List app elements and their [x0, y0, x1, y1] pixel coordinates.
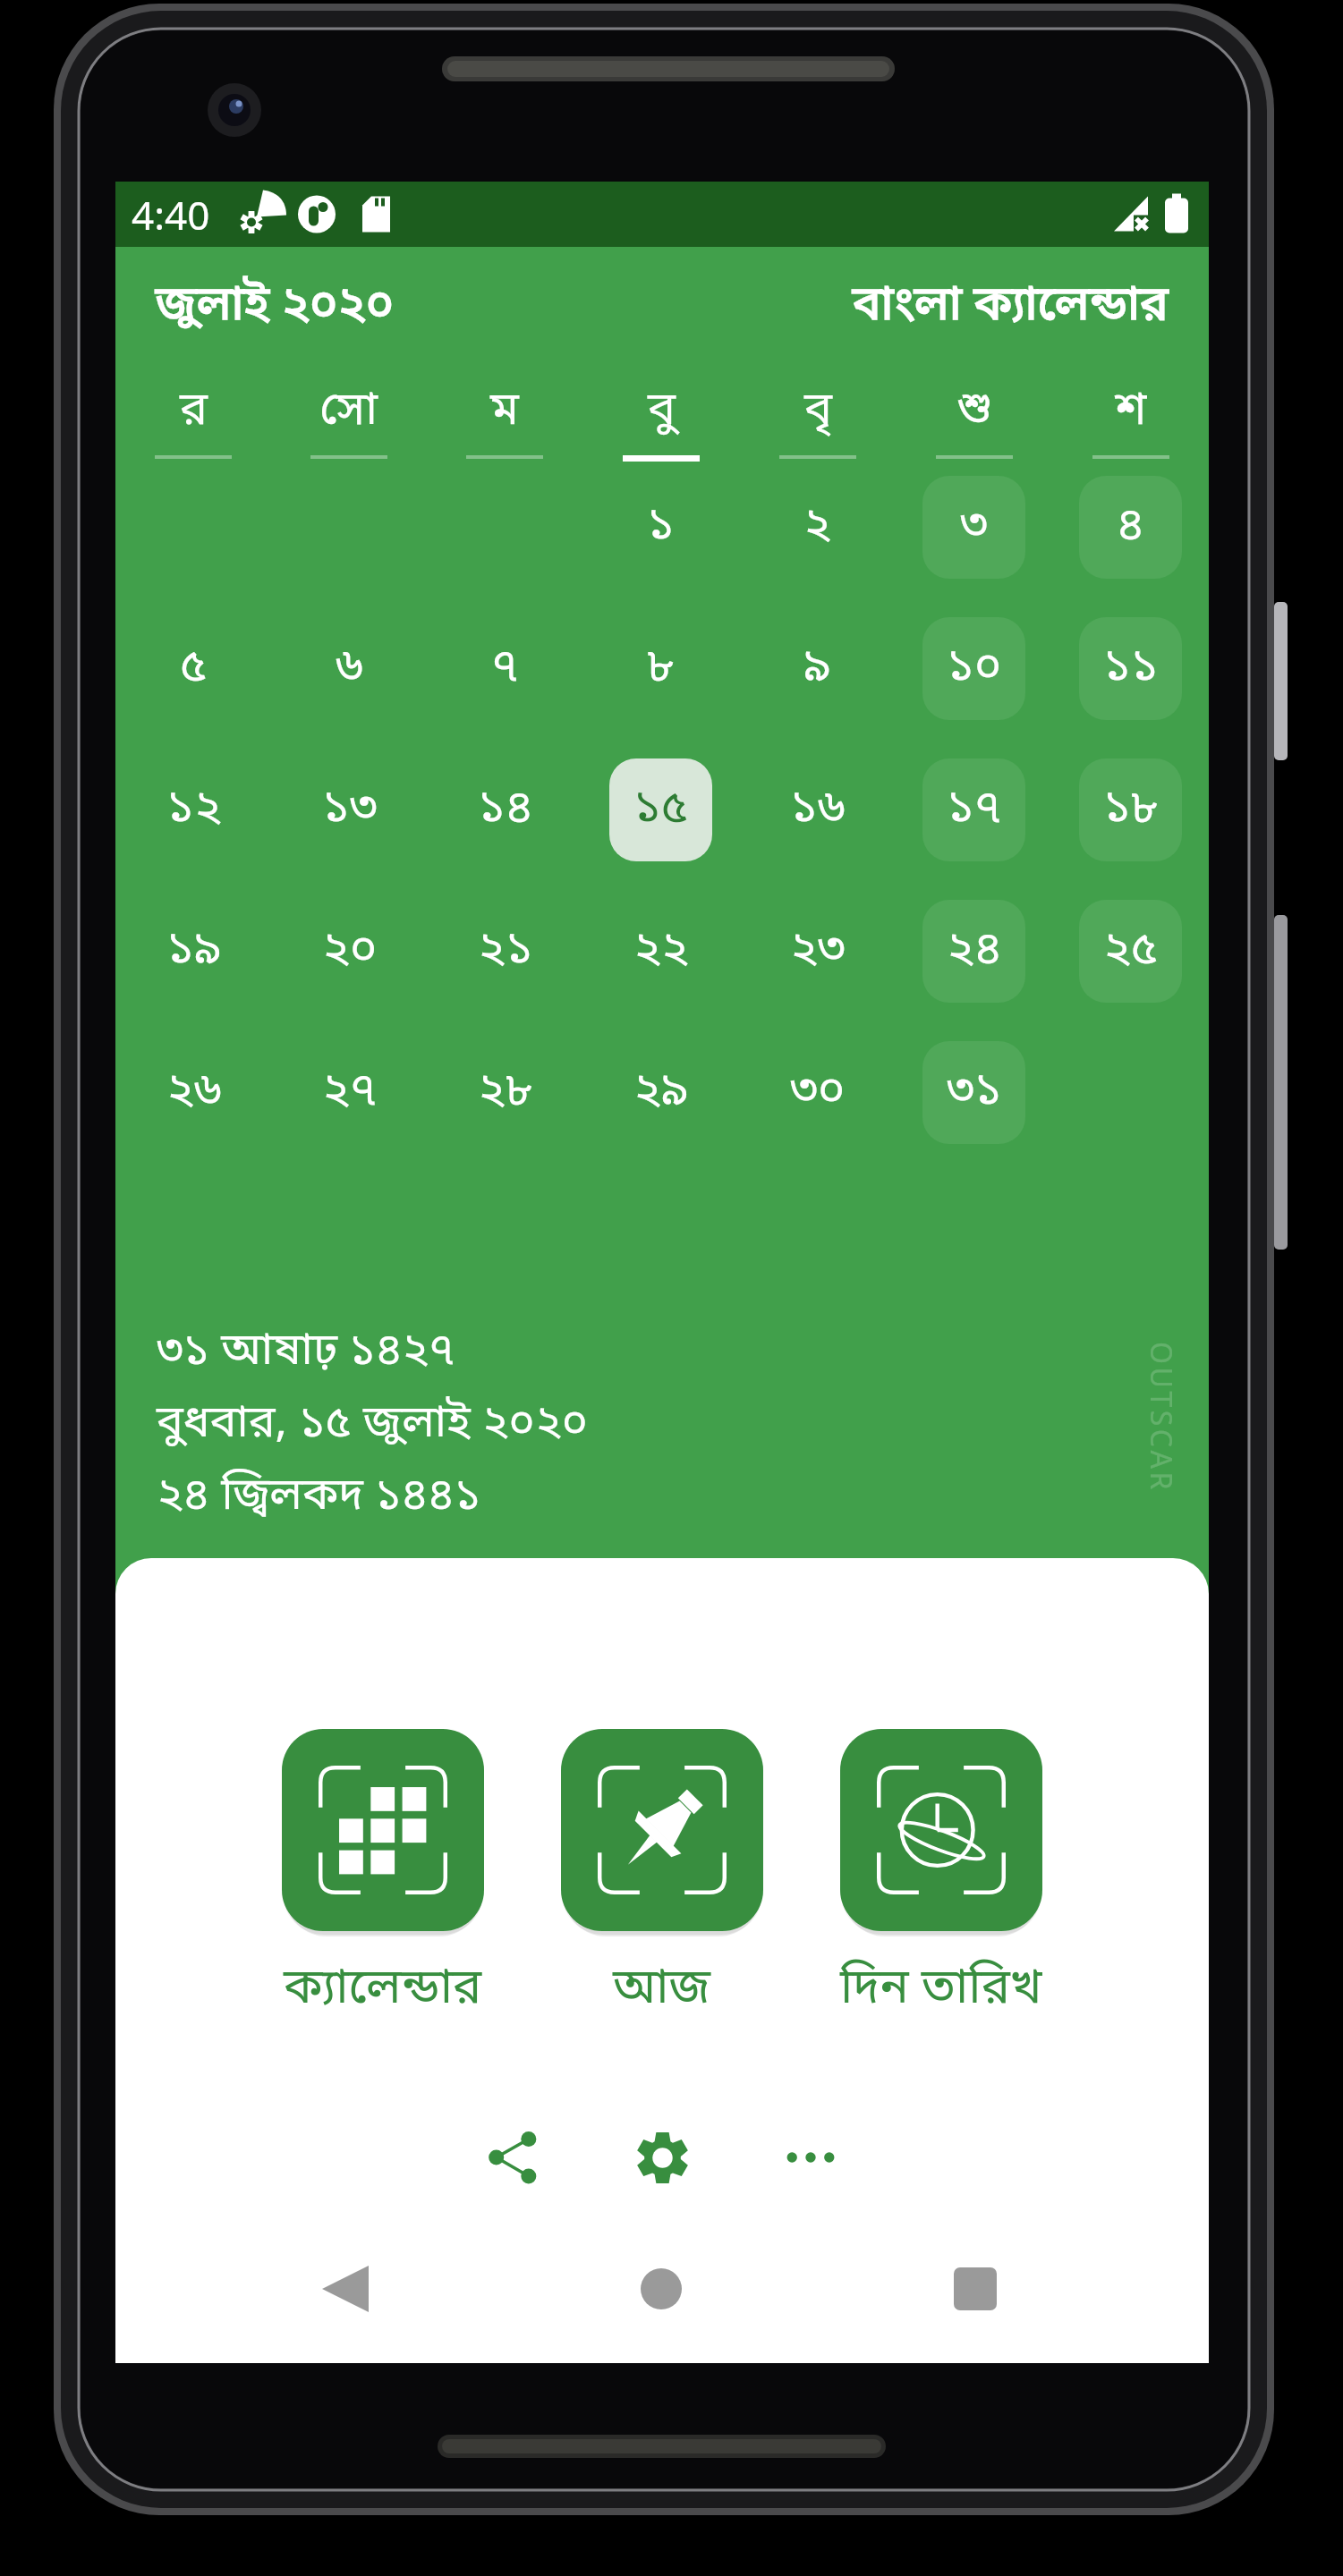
staticText: ৫ — [180, 638, 208, 699]
staticText: ৯ — [803, 638, 831, 699]
button[interactable]: ৭ — [454, 617, 557, 720]
button[interactable]: ১১ — [1079, 617, 1182, 720]
staticText: সো — [319, 381, 378, 443]
staticText: ক্যালেন্ডার — [284, 1958, 482, 2022]
staticText: ২৭ — [322, 1062, 378, 1123]
staticText: ২৮ — [478, 1062, 533, 1123]
staticText: ২৯ — [633, 1062, 689, 1123]
staticText: ২৪ — [947, 920, 1002, 982]
button[interactable]: ১২ — [142, 758, 245, 861]
button[interactable]: Settings — [612, 2107, 712, 2207]
staticText: বাংলা ক্যালেন্ডার — [853, 275, 1169, 338]
button[interactable]: জুলাই ২০২০ — [156, 275, 395, 338]
button[interactable]: ১৭ — [922, 758, 1025, 861]
button[interactable]: Back — [269, 2215, 421, 2363]
button[interactable]: ২০ — [298, 900, 401, 1003]
button[interactable]: ৩ — [922, 476, 1025, 579]
staticText: ২৩ — [790, 920, 846, 982]
staticText: ১৭ — [947, 779, 1002, 841]
staticText: ২২ — [633, 920, 689, 982]
button[interactable]: ১৯ — [142, 900, 245, 1003]
button[interactable]: ২৩ — [766, 900, 869, 1003]
staticText: ১৪ — [478, 779, 533, 841]
button[interactable]: Home — [585, 2215, 737, 2363]
staticText: দিন তারিখ — [840, 1958, 1042, 2022]
staticText: 4:40 — [132, 188, 210, 241]
button[interactable]: ২১ — [454, 900, 557, 1003]
button[interactable]: ২৪ — [922, 900, 1025, 1003]
staticText: OUTSCAR — [1143, 1342, 1181, 1493]
staticText: ১৮ — [1103, 779, 1159, 841]
button[interactable]: ১৬ — [766, 758, 869, 861]
button[interactable]: More options — [761, 2107, 861, 2207]
staticText: ৭ — [491, 638, 519, 699]
button[interactable]: ২৬ — [142, 1041, 245, 1144]
button[interactable]: ৫ — [142, 617, 245, 720]
button[interactable]: ২৫ — [1079, 900, 1182, 1003]
staticText: শ — [1115, 381, 1147, 443]
staticText: ২১ — [478, 920, 533, 982]
staticText: ১৬ — [790, 779, 846, 841]
button[interactable]: ম — [427, 381, 582, 484]
staticText: ৩১ — [947, 1062, 1002, 1123]
staticText: ২০ — [322, 920, 378, 982]
button[interactable]: ৪ — [1079, 476, 1182, 579]
button[interactable]: বৃ — [739, 381, 896, 484]
button[interactable]: ২৭ — [298, 1041, 401, 1144]
button[interactable]: ৮ — [609, 617, 712, 720]
button[interactable]: ১৫ — [609, 758, 712, 861]
staticText: বুধবার, ১৫ জুলাই ২০২০ — [157, 1395, 589, 1454]
staticText: ১৯ — [166, 920, 222, 982]
button[interactable]: র — [115, 381, 271, 484]
staticText: ৮ — [647, 638, 675, 699]
button[interactable]: ১ — [609, 476, 712, 579]
staticText: ম — [490, 381, 519, 443]
button[interactable]: দিন তারিখ — [840, 1729, 1042, 2022]
staticText: ২৪ জ্বিলকদ ১৪৪১ — [157, 1468, 481, 1527]
button[interactable]: Share — [463, 2107, 564, 2207]
button[interactable]: ক্যালেন্ডার — [282, 1729, 484, 2022]
button[interactable]: ২২ — [609, 900, 712, 1003]
button[interactable]: ৩০ — [766, 1041, 869, 1144]
button[interactable]: বাংলা ক্যালেন্ডার — [853, 275, 1169, 338]
staticText: ৪ — [1117, 496, 1144, 558]
button[interactable]: শ — [1052, 381, 1209, 484]
button[interactable]: শু — [896, 381, 1052, 484]
button[interactable]: ৯ — [766, 617, 869, 720]
button[interactable]: আজ — [561, 1729, 763, 2022]
staticText: ১৫ — [633, 779, 689, 841]
staticText: আজ — [613, 1958, 711, 2022]
staticText: শু — [956, 381, 992, 443]
button[interactable]: ১৩ — [298, 758, 401, 861]
button[interactable]: ৩১ — [922, 1041, 1025, 1144]
staticText: জুলাই ২০২০ — [156, 275, 395, 338]
staticText: ৬ — [336, 638, 363, 699]
button[interactable]: ১৮ — [1079, 758, 1182, 861]
staticText: ২৬ — [166, 1062, 222, 1123]
button[interactable]: Recents — [899, 2215, 1051, 2363]
staticText: ১৩ — [322, 779, 378, 841]
button[interactable]: ৬ — [298, 617, 401, 720]
staticText: বু — [648, 381, 676, 443]
staticText: বৃ — [804, 381, 832, 443]
staticText: ২ — [803, 496, 831, 558]
button[interactable]: সো — [271, 381, 427, 484]
staticText: ৩১ আষাঢ় ১৪২৭ — [157, 1323, 455, 1382]
staticText: ২৫ — [1103, 920, 1159, 982]
button[interactable]: ২৮ — [454, 1041, 557, 1144]
button[interactable]: ১০ — [922, 617, 1025, 720]
button[interactable]: বু — [582, 381, 739, 484]
staticText: র — [180, 381, 208, 443]
staticText: ৩ — [960, 496, 988, 558]
button[interactable]: ২৯ — [609, 1041, 712, 1144]
staticText: ১২ — [166, 779, 222, 841]
button[interactable]: ২ — [766, 476, 869, 579]
staticText: ১০ — [947, 638, 1002, 699]
staticText: ৩০ — [790, 1062, 846, 1123]
button[interactable]: ১৪ — [454, 758, 557, 861]
staticText: ১ — [647, 496, 675, 558]
staticText: ১১ — [1103, 638, 1159, 699]
